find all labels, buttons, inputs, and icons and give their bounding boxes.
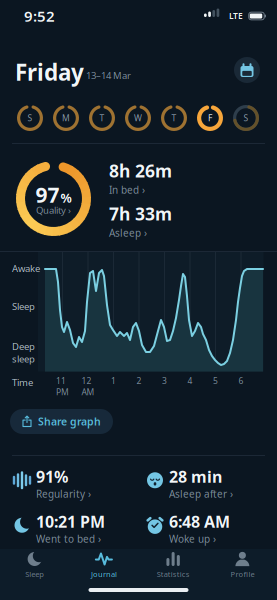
staticText: 5 — [213, 375, 218, 386]
staticText: Statistics — [157, 569, 190, 579]
button[interactable]: 91% — [12, 466, 142, 500]
staticText: T — [99, 112, 104, 124]
staticText: M — [62, 112, 70, 124]
staticText: 11 PM — [56, 375, 69, 398]
button[interactable]: 7h 33m — [109, 202, 172, 239]
button[interactable]: 8h 26m — [109, 159, 172, 196]
button[interactable]: S — [17, 105, 43, 131]
button[interactable]: Sleep — [0, 551, 69, 579]
button[interactable] — [234, 57, 260, 83]
staticText: F — [208, 112, 212, 124]
staticText: Quality › — [36, 204, 71, 216]
staticText: 10:21 PM — [36, 511, 105, 532]
staticText: W — [134, 112, 142, 124]
staticText: 13–14 Mar — [86, 69, 131, 82]
staticText: Awake — [12, 262, 40, 275]
staticText: S — [243, 112, 248, 124]
staticText: 4 — [187, 375, 192, 386]
button[interactable]: Statistics — [138, 551, 208, 579]
button[interactable]: W — [125, 105, 151, 131]
staticText: Sleep — [25, 569, 44, 579]
staticText: Deep sleep — [12, 340, 35, 365]
staticText: Woke up › — [169, 532, 216, 545]
staticText: Regularity › — [36, 487, 91, 500]
staticText: Profile — [230, 569, 254, 579]
staticText: Friday — [15, 57, 84, 87]
staticText: 7h 33m — [109, 202, 172, 225]
staticText: 12 AM — [81, 375, 94, 398]
staticText: Journal — [91, 569, 117, 579]
button[interactable]: 6:48 AM — [145, 511, 275, 545]
button[interactable]: Share graph — [10, 409, 113, 434]
button[interactable]: M — [53, 105, 79, 131]
staticText: 6:48 AM — [169, 511, 230, 532]
staticText: 91% — [36, 466, 68, 487]
staticText: Share graph — [38, 414, 101, 428]
button[interactable]: Journal — [69, 551, 138, 579]
button[interactable]: 97 — [16, 161, 91, 236]
staticText: Sleep — [12, 300, 35, 313]
button[interactable]: S — [233, 105, 259, 131]
staticText: Time — [12, 376, 33, 389]
staticText: Asleep after › — [169, 487, 233, 500]
button[interactable]: F — [197, 105, 223, 131]
staticText: 28 min — [169, 466, 222, 487]
staticText: S — [27, 112, 32, 124]
staticText: 6 — [238, 375, 243, 386]
staticText: Asleep › — [109, 226, 147, 239]
button[interactable]: Profile — [208, 551, 277, 579]
staticText: 3 — [162, 375, 167, 386]
staticText: Went to bed › — [36, 532, 101, 545]
button[interactable]: 10:21 PM — [12, 511, 142, 545]
staticText: 2 — [136, 375, 141, 386]
staticText: 1 — [111, 375, 116, 386]
staticText: 9:52 — [24, 6, 55, 26]
staticText: % — [60, 190, 71, 206]
staticText: 97 — [35, 181, 59, 209]
staticText: T — [171, 112, 176, 124]
button[interactable]: T — [161, 105, 187, 131]
button[interactable]: 28 min — [145, 466, 275, 500]
staticText: 8h 26m — [109, 159, 172, 182]
button[interactable]: T — [89, 105, 115, 131]
staticText: LTE — [229, 10, 243, 21]
staticText: In bed › — [109, 183, 145, 196]
